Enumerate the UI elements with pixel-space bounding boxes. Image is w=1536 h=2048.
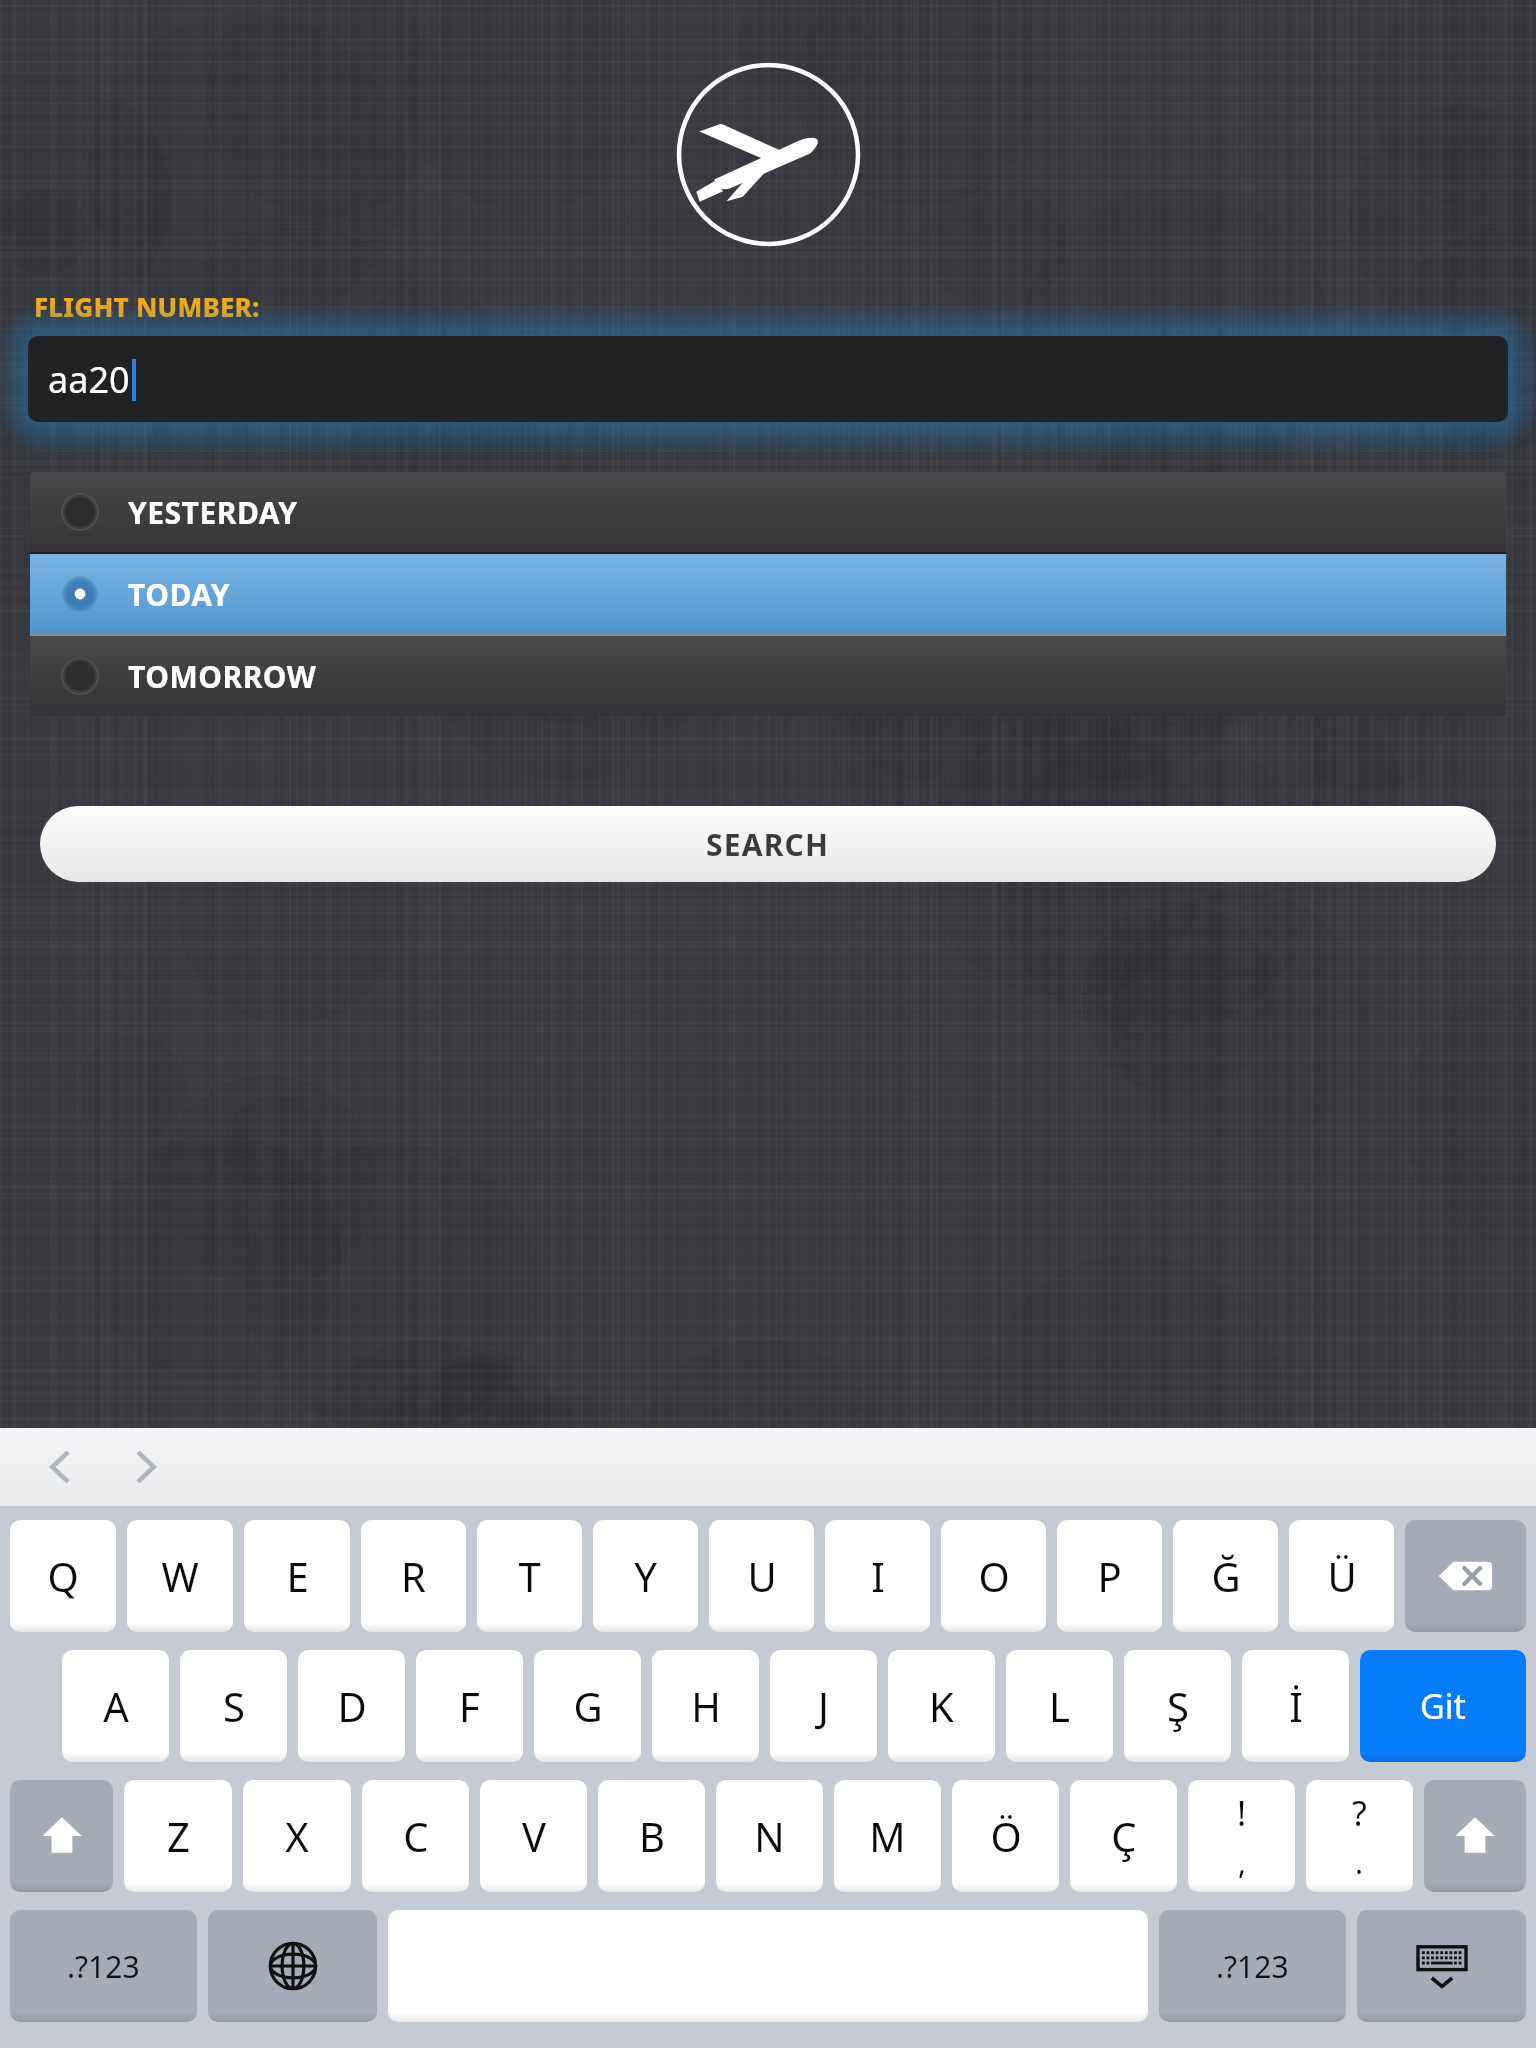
button[interactable]: Ö bbox=[952, 1780, 1059, 1892]
button[interactable]: .?123 bbox=[10, 1910, 197, 2022]
button[interactable]: Y bbox=[593, 1520, 698, 1632]
other: App logo bbox=[676, 62, 861, 247]
button[interactable]: T bbox=[477, 1520, 582, 1632]
button[interactable]: R bbox=[361, 1520, 466, 1632]
staticText: N bbox=[754, 1809, 785, 1863]
button[interactable]: Previous field bbox=[30, 1436, 92, 1498]
button[interactable]: I bbox=[825, 1520, 930, 1632]
button[interactable]: ? bbox=[1306, 1780, 1413, 1892]
staticText: . bbox=[1355, 1842, 1364, 1883]
button[interactable]: V bbox=[480, 1780, 587, 1892]
button[interactable]: A bbox=[62, 1650, 169, 1762]
button[interactable]: Next field bbox=[114, 1436, 176, 1498]
staticText: Git bbox=[1420, 1683, 1466, 1729]
button[interactable]: Change keyboard bbox=[208, 1910, 377, 2022]
staticText: R bbox=[401, 1549, 426, 1603]
button[interactable]: Git bbox=[1360, 1650, 1526, 1762]
button[interactable]: TODAY bbox=[30, 554, 1506, 634]
staticText: B bbox=[639, 1809, 665, 1863]
staticText: P bbox=[1097, 1549, 1122, 1603]
button[interactable]: W bbox=[127, 1520, 233, 1632]
staticText: Q bbox=[47, 1549, 79, 1603]
staticText: M bbox=[869, 1809, 906, 1863]
button[interactable]: C bbox=[362, 1780, 469, 1892]
button[interactable]: L bbox=[1006, 1650, 1113, 1762]
button[interactable]: Ç bbox=[1070, 1780, 1177, 1892]
staticText: ! bbox=[1237, 1790, 1247, 1836]
staticText: .?123 bbox=[1216, 1946, 1289, 1987]
staticText: O bbox=[978, 1549, 1010, 1603]
button[interactable]: Q bbox=[10, 1520, 116, 1632]
button[interactable]: B bbox=[598, 1780, 705, 1892]
staticText: I bbox=[871, 1549, 885, 1603]
button[interactable]: .?123 bbox=[1159, 1910, 1346, 2022]
button[interactable]: Ğ bbox=[1173, 1520, 1278, 1632]
staticText: L bbox=[1049, 1679, 1070, 1733]
staticText: A bbox=[103, 1679, 129, 1733]
button[interactable]: İ bbox=[1242, 1650, 1349, 1762]
staticText: X bbox=[285, 1809, 309, 1863]
staticText: aa20 bbox=[48, 355, 130, 404]
staticText: Ğ bbox=[1211, 1549, 1241, 1603]
button[interactable]: SEARCH bbox=[40, 806, 1496, 882]
staticText: Z bbox=[167, 1809, 190, 1863]
button[interactable]: U bbox=[709, 1520, 814, 1632]
staticText: K bbox=[929, 1679, 954, 1733]
staticText: YESTERDAY bbox=[128, 492, 298, 533]
button[interactable]: TOMORROW bbox=[30, 636, 1506, 716]
button[interactable]: H bbox=[652, 1650, 759, 1762]
staticText: FLIGHT NUMBER: bbox=[34, 289, 260, 324]
staticText: Ö bbox=[990, 1809, 1022, 1863]
button[interactable]: O bbox=[941, 1520, 1046, 1632]
staticText: .?123 bbox=[67, 1946, 140, 1987]
button[interactable]: YESTERDAY bbox=[30, 472, 1506, 552]
button[interactable]: M bbox=[834, 1780, 941, 1892]
button[interactable]: Ü bbox=[1289, 1520, 1394, 1632]
staticText: D bbox=[337, 1679, 367, 1733]
button[interactable]: Hide keyboard bbox=[1357, 1910, 1526, 2022]
button[interactable]: Space bbox=[388, 1910, 1148, 2022]
staticText: T bbox=[518, 1549, 541, 1603]
staticText: W bbox=[161, 1549, 199, 1603]
staticText: Y bbox=[634, 1549, 657, 1603]
button[interactable]: ! bbox=[1188, 1780, 1295, 1892]
staticText: Ç bbox=[1111, 1809, 1137, 1863]
button[interactable]: Backspace bbox=[1405, 1520, 1526, 1632]
staticText: Ü bbox=[1327, 1549, 1357, 1603]
button[interactable]: Shift bbox=[10, 1780, 113, 1892]
staticText: SEARCH bbox=[706, 824, 830, 865]
button[interactable]: S bbox=[180, 1650, 287, 1762]
staticText: S bbox=[223, 1679, 245, 1733]
button[interactable]: N bbox=[716, 1780, 823, 1892]
button[interactable]: G bbox=[534, 1650, 641, 1762]
staticText: U bbox=[747, 1549, 777, 1603]
staticText: TOMORROW bbox=[128, 656, 317, 697]
staticText: İ bbox=[1289, 1679, 1303, 1733]
button[interactable]: X bbox=[243, 1780, 351, 1892]
staticText: C bbox=[403, 1809, 429, 1863]
staticText: TODAY bbox=[128, 574, 231, 615]
button[interactable]: Shift bbox=[1424, 1780, 1526, 1892]
staticText: E bbox=[286, 1549, 309, 1603]
button[interactable]: E bbox=[244, 1520, 350, 1632]
button[interactable]: K bbox=[888, 1650, 995, 1762]
staticText: H bbox=[691, 1679, 721, 1733]
staticText: ? bbox=[1352, 1790, 1367, 1836]
staticText: , bbox=[1238, 1842, 1247, 1883]
button[interactable]: D bbox=[298, 1650, 405, 1762]
staticText: J bbox=[818, 1679, 829, 1733]
button[interactable]: J bbox=[770, 1650, 877, 1762]
staticText: F bbox=[459, 1679, 480, 1733]
button[interactable]: F bbox=[416, 1650, 523, 1762]
staticText: G bbox=[573, 1679, 603, 1733]
button[interactable]: Ş bbox=[1124, 1650, 1231, 1762]
button[interactable]: Z bbox=[124, 1780, 232, 1892]
staticText: V bbox=[522, 1809, 546, 1863]
button[interactable]: P bbox=[1057, 1520, 1162, 1632]
staticText: Ş bbox=[1167, 1679, 1189, 1733]
button[interactable]: aa20 bbox=[28, 336, 1508, 422]
